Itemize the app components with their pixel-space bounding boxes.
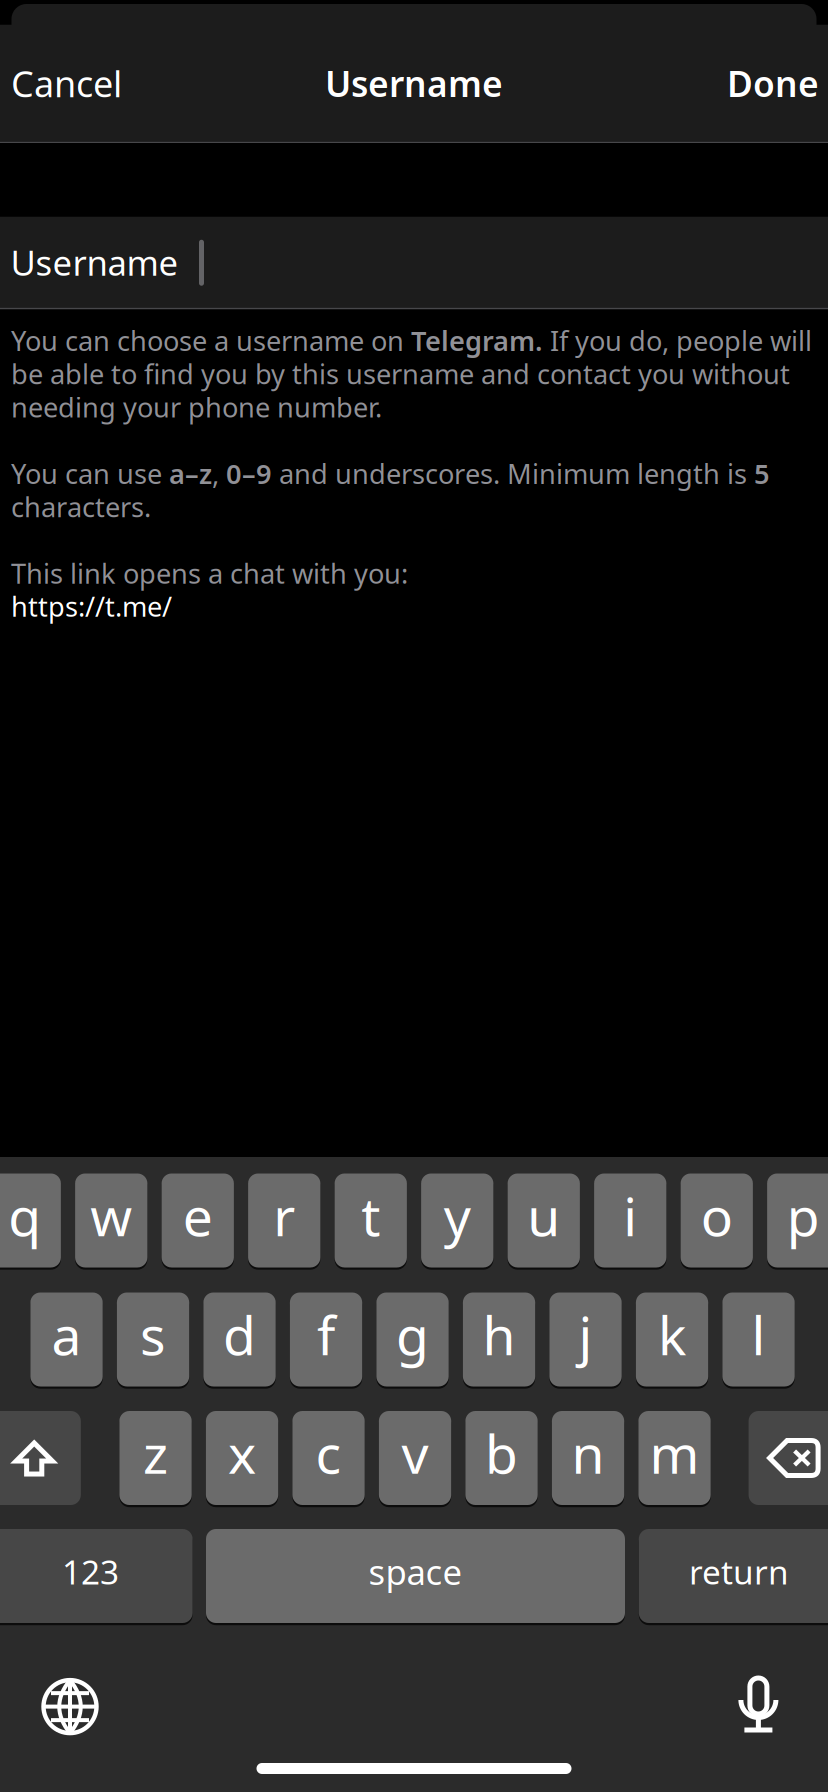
button[interactable]: j	[549, 1292, 622, 1386]
staticText: c	[315, 1417, 341, 1489]
button[interactable]: Next keyboard	[40, 1677, 100, 1737]
staticText: space	[368, 1548, 462, 1595]
staticText: p	[787, 1179, 820, 1252]
staticText: e	[183, 1179, 213, 1252]
button[interactable]: e	[162, 1173, 234, 1267]
button[interactable]: a	[30, 1292, 103, 1386]
staticText: Username	[10, 239, 178, 286]
button[interactable]: r	[248, 1173, 320, 1267]
staticText: d	[223, 1298, 256, 1371]
staticText: z	[143, 1417, 168, 1489]
button[interactable]: n	[552, 1411, 624, 1505]
staticText: Cancel	[11, 59, 122, 108]
button[interactable]: p	[767, 1173, 828, 1267]
button[interactable]: Delete	[749, 1411, 828, 1505]
button[interactable]: d	[203, 1292, 276, 1386]
staticText: 123	[62, 1549, 119, 1594]
staticText: n	[571, 1417, 604, 1489]
button[interactable]: m	[638, 1411, 711, 1505]
button[interactable]: c	[292, 1411, 365, 1505]
staticText: You can choose a username on Telegram. I…	[11, 322, 812, 592]
button[interactable]: w	[75, 1173, 147, 1267]
button[interactable]: o	[681, 1173, 753, 1267]
staticText: f	[317, 1298, 335, 1371]
button[interactable]: f	[290, 1292, 362, 1386]
button[interactable]: g	[376, 1292, 449, 1386]
staticText: https://t.me/	[11, 588, 172, 625]
button[interactable]: u	[508, 1173, 580, 1267]
button[interactable]: k	[636, 1292, 708, 1386]
staticText: t	[361, 1179, 380, 1252]
staticText: q	[8, 1179, 41, 1252]
button[interactable]: h	[463, 1292, 535, 1386]
button[interactable]: 123	[0, 1529, 193, 1623]
button[interactable]: Cancel	[0, 25, 146, 142]
staticText: o	[701, 1179, 733, 1252]
staticText: b	[485, 1417, 518, 1489]
button[interactable]: Shift	[0, 1411, 81, 1505]
button[interactable]: return	[639, 1529, 828, 1623]
button[interactable]: v	[379, 1411, 451, 1505]
button[interactable]: x	[206, 1411, 278, 1505]
button[interactable]: b	[465, 1411, 538, 1505]
button[interactable]: q	[0, 1173, 61, 1267]
staticText: w	[90, 1179, 132, 1252]
staticText: k	[658, 1298, 686, 1371]
button[interactable]: l	[722, 1292, 795, 1386]
staticText: s	[140, 1298, 166, 1371]
button[interactable]: t	[335, 1173, 407, 1267]
staticText: u	[527, 1179, 560, 1252]
staticText: j	[578, 1298, 592, 1371]
staticText: Done	[727, 59, 819, 107]
staticText: v	[401, 1417, 428, 1489]
button[interactable]: s	[117, 1292, 189, 1386]
staticText: l	[751, 1298, 765, 1371]
staticText: y	[444, 1179, 471, 1252]
staticText: x	[228, 1417, 256, 1489]
button[interactable]: z	[119, 1411, 192, 1505]
staticText: return	[689, 1549, 789, 1594]
button[interactable]: space	[206, 1529, 625, 1623]
staticText: i	[623, 1179, 637, 1252]
staticText: g	[396, 1298, 429, 1371]
button[interactable]: Dictate	[728, 1671, 788, 1737]
staticText: a	[51, 1298, 81, 1371]
button[interactable]: Done	[703, 25, 828, 142]
staticText: m	[649, 1417, 699, 1489]
button[interactable]: i	[594, 1173, 666, 1267]
staticText: Username	[325, 59, 503, 107]
staticText: r	[273, 1179, 295, 1252]
button[interactable]: y	[421, 1173, 493, 1267]
staticText: h	[482, 1298, 515, 1371]
